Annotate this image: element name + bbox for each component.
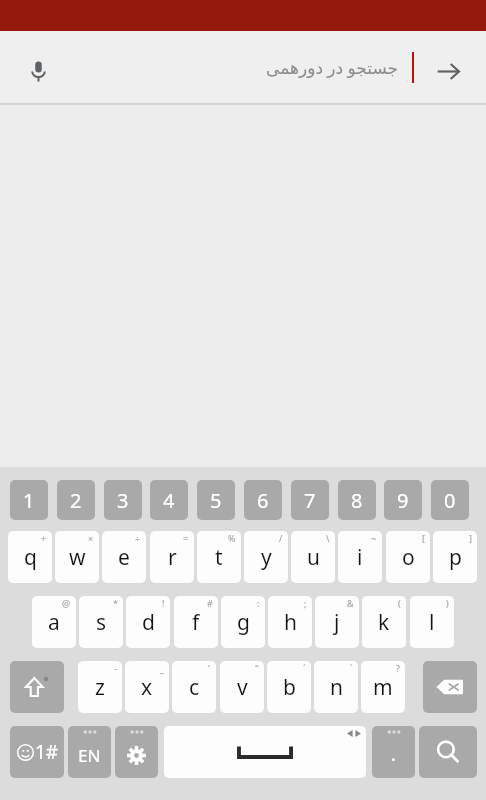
button[interactable]: Submit search	[424, 47, 472, 95]
button[interactable]: j	[315, 596, 359, 648]
button[interactable]: q	[8, 531, 52, 583]
button[interactable]: m	[361, 661, 405, 713]
button[interactable]: Voice search	[14, 47, 62, 95]
staticText: f	[192, 608, 200, 637]
staticText: _	[160, 662, 164, 674]
staticText: ´	[303, 662, 306, 674]
button[interactable]: o	[386, 531, 430, 583]
staticText: 1#	[35, 739, 59, 765]
button[interactable]: h	[268, 596, 312, 648]
staticText: ~	[371, 532, 377, 544]
button[interactable]: 3	[104, 480, 142, 520]
staticText: v	[237, 673, 248, 702]
staticText: 4	[163, 487, 175, 514]
staticText: 5	[210, 487, 222, 514]
staticText: q	[24, 543, 37, 572]
staticText: #	[207, 597, 213, 609]
button[interactable]: 2	[57, 480, 95, 520]
staticText: ;	[304, 597, 307, 609]
staticText: 9	[397, 487, 409, 514]
button[interactable]: 9	[384, 480, 422, 520]
button[interactable]: w	[55, 531, 99, 583]
staticText: t	[215, 543, 223, 572]
button[interactable]: Emoji and symbols	[10, 726, 64, 778]
button[interactable]: 5	[197, 480, 235, 520]
button[interactable]: Shift	[10, 661, 64, 713]
button[interactable]: y	[244, 531, 288, 583]
staticText: b	[283, 673, 296, 702]
staticText: ÷	[135, 532, 141, 544]
staticText: c	[189, 673, 200, 702]
staticText: j	[334, 608, 340, 637]
button[interactable]: d	[126, 596, 170, 648]
staticText: x	[141, 673, 153, 702]
button[interactable]: Space	[164, 726, 366, 778]
button[interactable]: a	[32, 596, 76, 648]
staticText: *	[113, 597, 118, 609]
button[interactable]: Backspace	[423, 661, 477, 713]
staticText: 3	[117, 487, 129, 514]
staticText: u	[307, 543, 320, 572]
staticText: ?	[396, 662, 400, 674]
button[interactable]: x	[125, 661, 169, 713]
staticText: r	[168, 543, 177, 572]
button[interactable]: g	[221, 596, 265, 648]
button[interactable]: Settings	[115, 726, 158, 778]
button[interactable]: z	[78, 661, 122, 713]
staticText: e	[118, 543, 130, 572]
staticText: &	[347, 597, 354, 609]
staticText: m	[373, 673, 393, 702]
button[interactable]: t	[197, 531, 241, 583]
button[interactable]: 1	[10, 480, 48, 520]
staticText: i	[357, 543, 363, 572]
staticText: '	[208, 662, 211, 674]
staticText: 8	[351, 487, 363, 514]
button[interactable]: 7	[291, 480, 329, 520]
staticText: 7	[304, 487, 316, 514]
staticText: ×	[88, 532, 94, 544]
button[interactable]: b	[267, 661, 311, 713]
button[interactable]: 0	[431, 480, 469, 520]
staticText: ]	[469, 532, 472, 544]
staticText: `	[350, 662, 353, 674]
staticText: l	[429, 608, 435, 637]
staticText: z	[95, 673, 105, 702]
staticText: y	[261, 543, 272, 572]
button[interactable]: l	[410, 596, 454, 648]
button[interactable]: i	[338, 531, 382, 583]
button[interactable]: c	[172, 661, 216, 713]
button[interactable]: k	[362, 596, 406, 648]
staticText: "	[255, 662, 259, 674]
staticText: g	[237, 608, 250, 637]
button[interactable]: s	[79, 596, 123, 648]
staticText: s	[96, 608, 107, 637]
staticText: p	[449, 543, 462, 572]
button[interactable]: 6	[244, 480, 282, 520]
button[interactable]: e	[102, 531, 146, 583]
staticText: 0	[444, 487, 456, 514]
staticText: 2	[70, 487, 82, 514]
staticText: [	[422, 532, 425, 544]
button[interactable]: 8	[338, 480, 376, 520]
staticText: \	[326, 532, 330, 544]
staticText: جستجو در دورهمی	[266, 56, 399, 79]
button[interactable]: Period	[372, 726, 415, 778]
staticText: n	[330, 673, 343, 702]
staticText: o	[402, 543, 415, 572]
button[interactable]: f	[174, 596, 218, 648]
staticText: +	[41, 532, 47, 544]
button[interactable]: n	[314, 661, 358, 713]
staticText: =	[183, 532, 189, 544]
button[interactable]: p	[433, 531, 477, 583]
button[interactable]: Language EN	[68, 726, 111, 778]
staticText: %	[228, 532, 236, 544]
staticText: 6	[257, 487, 269, 514]
button[interactable]: u	[291, 531, 335, 583]
button[interactable]: r	[150, 531, 194, 583]
button[interactable]: v	[220, 661, 264, 713]
button[interactable]: 4	[150, 480, 188, 520]
staticText: )	[446, 597, 449, 609]
staticText: 1	[23, 487, 35, 514]
button[interactable]: Search	[419, 726, 477, 778]
staticText: d	[142, 608, 155, 637]
